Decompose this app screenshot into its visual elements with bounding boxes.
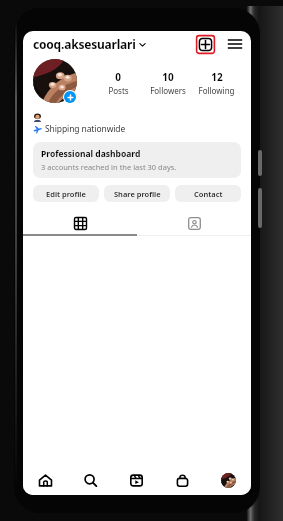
button[interactable]: Shop (159, 465, 205, 495)
button[interactable]: Tagged posts (137, 210, 251, 236)
button[interactable]: Search (68, 465, 113, 495)
button[interactable]: Professional dashboard (33, 142, 241, 178)
button[interactable]: 0 (93, 68, 143, 98)
button[interactable]: Profile (205, 465, 251, 495)
staticText: Edit profile (46, 189, 86, 199)
button[interactable]: Edit profile (33, 185, 99, 202)
staticText: Professional dashboard (41, 148, 141, 160)
staticText: 3 accounts reached in the last 30 days. (41, 162, 177, 172)
staticText: 0 (115, 70, 121, 84)
button[interactable]: Share profile (104, 185, 170, 202)
button[interactable]: Reels (113, 465, 159, 495)
button[interactable]: Contact (175, 185, 241, 202)
button[interactable]: New post (196, 35, 215, 54)
staticText: Posts (108, 85, 129, 96)
staticText: Contact (194, 189, 223, 199)
staticText: 12 (211, 70, 223, 84)
button[interactable]: 12 (192, 68, 241, 98)
staticText: 10 (162, 70, 174, 84)
staticText: cooq.aksesuarlari (33, 36, 136, 52)
button[interactable]: Profile photo (33, 59, 81, 107)
staticText: Followers (150, 85, 186, 96)
button[interactable]: Menu (225, 34, 245, 54)
button[interactable]: Home (23, 465, 68, 495)
button[interactable]: cooq.aksesuarlari (31, 34, 148, 54)
button[interactable]: 10 (143, 68, 192, 98)
staticText: Share profile (114, 189, 161, 199)
button[interactable]: Grid posts (23, 210, 137, 236)
staticText: Following (198, 85, 235, 96)
staticText: Shipping nationwide (45, 123, 126, 135)
